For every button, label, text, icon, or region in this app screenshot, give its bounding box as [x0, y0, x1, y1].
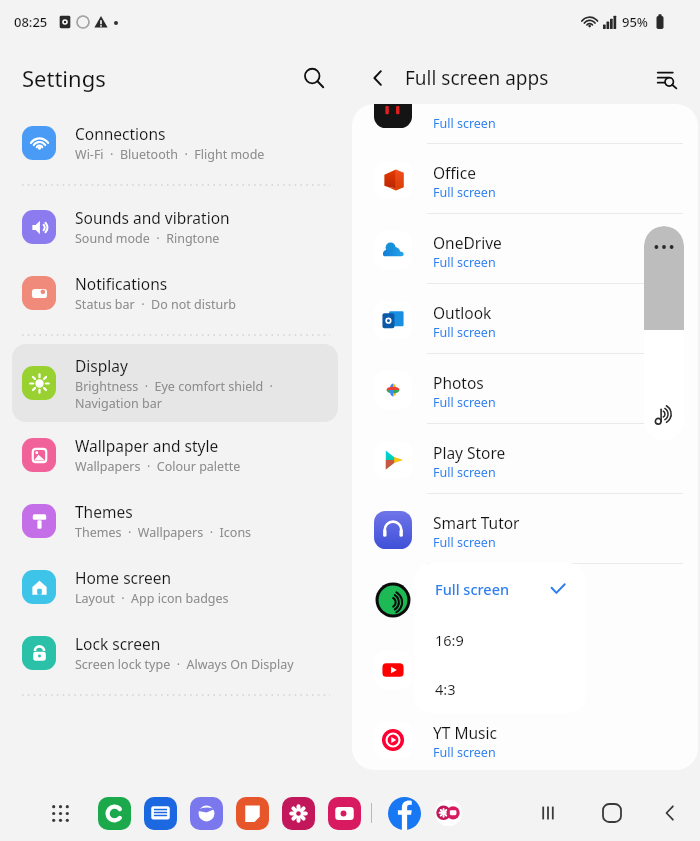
button[interactable]: Full screen: [414, 563, 586, 615]
button[interactable]: All apps: [46, 799, 74, 827]
button[interactable]: facebook: [386, 795, 422, 831]
button[interactable]: Home: [598, 799, 626, 827]
staticText: Screen lock type · Always On Display: [75, 656, 294, 673]
staticText: Themes: [75, 501, 133, 522]
button[interactable]: contacts: [96, 795, 132, 831]
button[interactable]: Lock screen: [12, 620, 338, 686]
button[interactable]: Outlook: [352, 284, 698, 354]
staticText: Layout · App icon badges: [75, 590, 229, 607]
button[interactable]: Back: [358, 58, 398, 98]
staticText: 16:9: [435, 630, 464, 650]
staticText: 95%: [622, 13, 648, 31]
button[interactable]: insta: [326, 795, 362, 831]
staticText: Sounds and vibration: [75, 207, 230, 228]
button[interactable]: Edge panel: [644, 226, 684, 440]
button[interactable]: Search: [292, 56, 336, 100]
staticText: Office: [433, 162, 476, 183]
button[interactable]: split: [430, 795, 466, 831]
staticText: Home screen: [75, 567, 172, 588]
button[interactable]: Back: [656, 799, 684, 827]
staticText: OneDrive: [433, 232, 502, 253]
button[interactable]: Sounds and vibration: [12, 194, 338, 260]
button[interactable]: Wallpaper and style: [12, 422, 338, 488]
staticText: Status bar · Do not disturb: [75, 296, 237, 313]
staticText: Full screen: [433, 254, 496, 271]
staticText: Connections: [75, 123, 166, 144]
staticText: Settings: [22, 63, 106, 93]
button[interactable]: Photos: [352, 354, 698, 424]
button[interactable]: messages: [142, 795, 178, 831]
staticText: Navigation bar: [75, 395, 162, 412]
staticText: Play Store: [433, 442, 506, 463]
button[interactable]: Smart Tutor: [352, 494, 698, 564]
staticText: Photos: [433, 372, 484, 393]
staticText: Full screen: [433, 324, 496, 341]
button[interactable]: Home screen: [12, 554, 338, 620]
staticText: Lock screen: [75, 633, 161, 654]
staticText: Full screen: [433, 464, 496, 481]
button[interactable]: Office: [352, 144, 698, 214]
staticText: Spotify: [433, 582, 484, 603]
button[interactable]: 16:9: [414, 615, 586, 664]
staticText: Full screen: [435, 579, 510, 599]
staticText: Outlook: [433, 302, 492, 323]
button[interactable]: YT Music: [352, 704, 698, 770]
staticText: Sound mode · Ringtone: [75, 230, 220, 247]
button[interactable]: OneDrive: [352, 214, 698, 284]
staticText: Wi-Fi · Bluetooth · Flight mode: [75, 146, 265, 163]
button[interactable]: Display: [12, 344, 338, 422]
button[interactable]: YouTube: [352, 634, 698, 704]
staticText: Notifications: [75, 273, 168, 294]
staticText: 4:3: [435, 679, 456, 699]
button[interactable]: notes: [234, 795, 270, 831]
staticText: Full screen: [433, 115, 496, 132]
staticText: Smart Tutor: [433, 512, 520, 533]
staticText: YT Music: [433, 722, 497, 743]
button[interactable]: Full screen: [352, 104, 698, 144]
button[interactable]: Notifications: [12, 260, 338, 326]
button[interactable]: Search and filter: [646, 58, 686, 98]
button[interactable]: Play Store: [352, 424, 698, 494]
button[interactable]: Connections: [12, 110, 338, 176]
button[interactable]: Spotify: [352, 564, 698, 634]
staticText: Full screen: [433, 184, 496, 201]
staticText: Full screen: [433, 534, 496, 551]
staticText: Full screen: [433, 744, 496, 761]
button[interactable]: 4:3: [414, 664, 586, 713]
button[interactable]: Recents: [534, 799, 562, 827]
staticText: Full screen: [433, 674, 496, 691]
staticText: Brightness · Eye comfort shield ·: [75, 378, 273, 395]
staticText: Wallpaper and style: [75, 435, 219, 456]
staticText: 08:25: [14, 13, 48, 31]
button[interactable]: internet: [188, 795, 224, 831]
staticText: Display: [75, 355, 128, 376]
button[interactable]: health: [280, 795, 316, 831]
staticText: Themes · Wallpapers · Icons: [75, 524, 252, 541]
staticText: Full screen apps: [405, 65, 549, 91]
button[interactable]: Themes: [12, 488, 338, 554]
staticText: Wallpapers · Colour palette: [75, 458, 241, 475]
staticText: Full screen: [433, 394, 496, 411]
